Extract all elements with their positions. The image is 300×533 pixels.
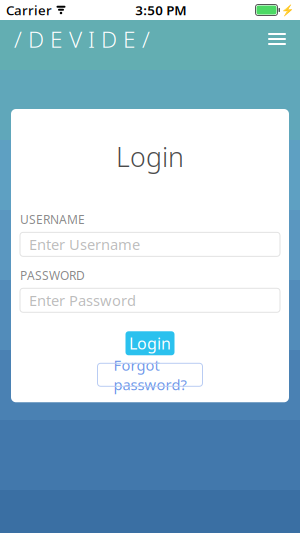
button[interactable]: Menu — [260, 25, 294, 53]
staticText: Enter Password — [29, 290, 136, 310]
staticText: 3:50 PM — [135, 1, 186, 19]
button[interactable]: Forgot password? — [97, 363, 202, 386]
staticText: Login — [116, 139, 184, 174]
staticText: USERNAME — [20, 211, 85, 227]
staticText: Enter Username — [29, 235, 140, 254]
staticText: Forgot password? — [113, 355, 186, 394]
staticText: Login — [129, 333, 171, 354]
staticText: ⚡ — [281, 4, 294, 16]
staticText: / D E V I D E / — [14, 24, 150, 54]
button[interactable]: Login — [125, 331, 174, 355]
staticText: PASSWORD — [20, 267, 85, 283]
staticText: Carrier — [6, 1, 52, 19]
